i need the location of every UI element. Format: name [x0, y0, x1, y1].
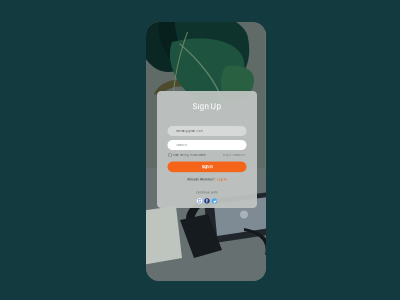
- staticText: G: [197, 198, 201, 204]
- staticText: Password: [175, 143, 187, 147]
- button[interactable]: Continue with Twitter: [212, 198, 217, 204]
- staticText: Sign Up: [192, 102, 221, 111]
- button[interactable]: Continue with Google: [197, 198, 202, 204]
- button[interactable]: Continue with Facebook: [204, 198, 210, 204]
- staticText: Continue With: [196, 191, 218, 194]
- staticText: Sign In: [201, 164, 212, 169]
- staticText: f: [206, 198, 208, 204]
- staticText: Log In: [217, 178, 227, 181]
- button[interactable]: Sign In: [167, 161, 246, 172]
- staticText: Already Member?: [187, 178, 215, 181]
- staticText: myemail@gmail.com: [175, 129, 202, 133]
- staticText: Forgot Password?: [222, 153, 245, 157]
- button[interactable]: Already Member?: [187, 178, 227, 181]
- staticText: Keep me log in this device: [173, 153, 205, 157]
